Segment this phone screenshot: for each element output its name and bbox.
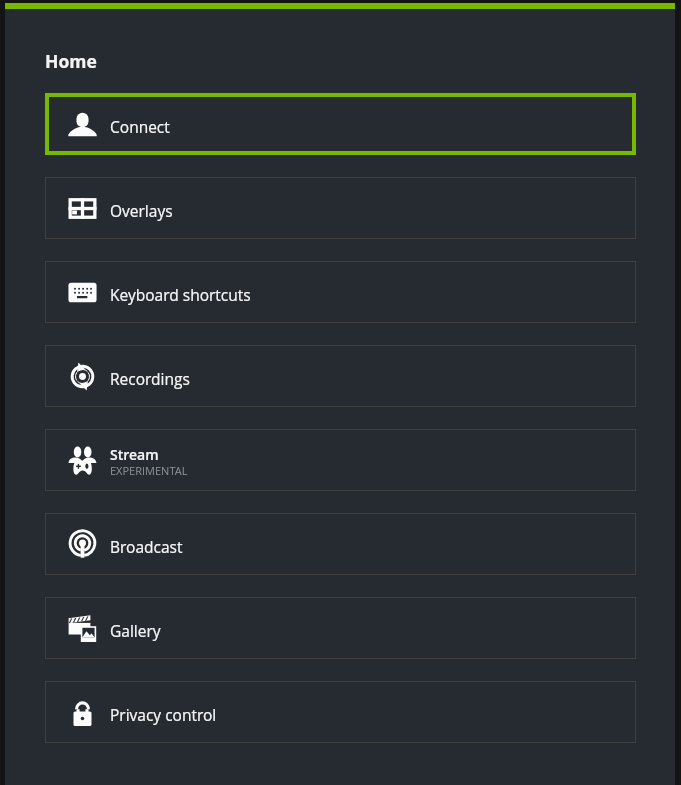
other: Broadcast: [68, 530, 97, 559]
staticText: Keyboard shortcuts: [110, 285, 251, 306]
other: Stream: [68, 446, 97, 475]
button[interactable]: Keyboard shortcuts: [45, 261, 636, 323]
button[interactable]: Broadcast: [45, 513, 636, 575]
staticText: Stream: [110, 445, 159, 464]
button[interactable]: Recordings: [45, 345, 636, 407]
staticText: Overlays: [110, 201, 173, 222]
button[interactable]: Connect: [45, 93, 636, 155]
button[interactable]: Privacy control: [45, 681, 636, 743]
button[interactable]: Gallery: [45, 597, 636, 659]
staticText: Privacy control: [110, 705, 217, 726]
button[interactable]: Overlays: [45, 177, 636, 239]
staticText: Gallery: [110, 621, 161, 642]
other: Keyboard shortcuts: [68, 278, 97, 307]
other: Recordings: [68, 362, 97, 391]
staticText: EXPERIMENTAL: [110, 463, 188, 478]
staticText: Recordings: [110, 369, 190, 390]
staticText: Home: [45, 50, 97, 73]
other: Privacy control: [68, 698, 97, 727]
other: Overlays: [68, 194, 97, 223]
staticText: Broadcast: [110, 537, 183, 558]
button[interactable]: Stream: [45, 429, 636, 491]
staticText: Connect: [110, 117, 170, 138]
other: Connect: [68, 110, 97, 139]
other: Gallery: [68, 614, 97, 643]
